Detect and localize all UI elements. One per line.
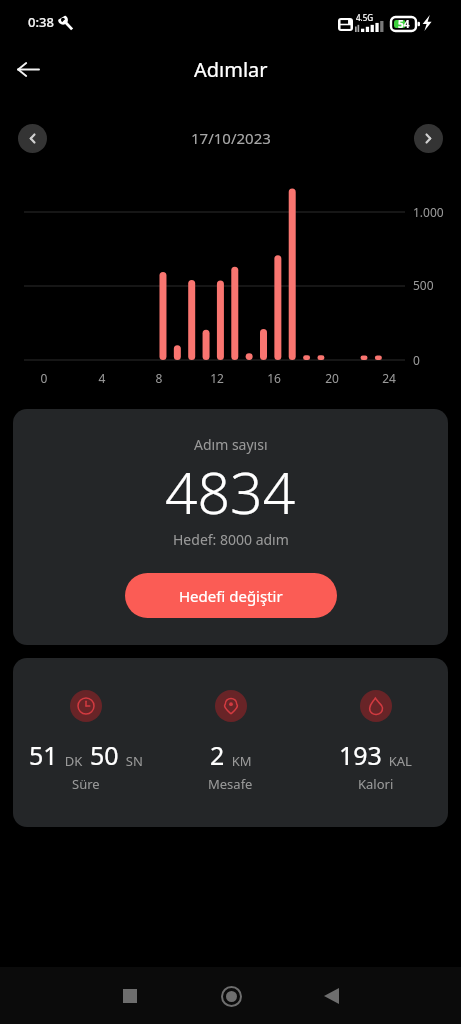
staticText: 24: [376, 370, 402, 386]
button[interactable]: Hedefi değiştir: [125, 573, 337, 618]
staticText: SN: [119, 752, 143, 770]
staticText: 193: [339, 738, 382, 772]
button[interactable]: Next day: [414, 124, 443, 153]
staticText: KM: [225, 752, 252, 770]
staticText: 1.000: [413, 204, 444, 220]
staticText: 0: [31, 370, 57, 386]
staticText: 17/10/2023: [191, 128, 271, 148]
staticText: Adımlar: [194, 56, 268, 83]
staticText: 8: [146, 370, 172, 386]
staticText: 50: [90, 738, 119, 772]
staticText: Adım sayısı: [194, 435, 268, 454]
staticText: KAL: [382, 752, 412, 770]
staticText: 20: [319, 370, 345, 386]
staticText: 4.5G: [356, 12, 374, 23]
staticText: Kalori: [358, 775, 394, 793]
staticText: Hedefi değiştir: [179, 586, 283, 606]
button[interactable]: Previous day: [18, 124, 47, 153]
button[interactable]: Back: [6, 47, 50, 91]
staticText: Mesafe: [208, 775, 253, 793]
staticText: 51: [29, 738, 58, 772]
staticText: 16: [261, 370, 287, 386]
staticText: 0: [413, 352, 420, 368]
staticText: Hedef: 8000 adım: [173, 530, 289, 549]
button[interactable]: Recents: [108, 974, 152, 1018]
staticText: 4834: [165, 453, 296, 531]
staticText: 12: [204, 370, 230, 386]
staticText: 0:38: [28, 13, 54, 31]
staticText: 500: [413, 277, 434, 293]
button[interactable]: Home: [209, 974, 253, 1018]
staticText: 4: [89, 370, 115, 386]
staticText: 2: [210, 738, 225, 772]
staticText: Süre: [72, 775, 100, 793]
staticText: DK: [58, 752, 90, 770]
button[interactable]: Back: [309, 974, 353, 1018]
staticText: 54: [398, 17, 410, 31]
